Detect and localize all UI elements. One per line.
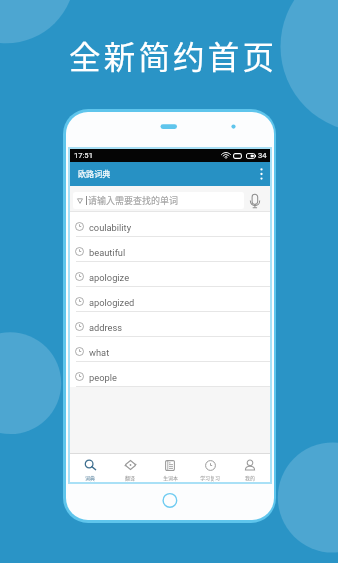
staticText: 词典 — [85, 474, 95, 481]
button[interactable]: what — [70, 337, 270, 361]
button[interactable]: 词典 — [70, 454, 110, 482]
staticText: beautiful — [89, 247, 126, 258]
button[interactable]: 翻译 — [110, 454, 150, 482]
staticText: coulability — [89, 222, 132, 233]
button[interactable]: apologized — [70, 287, 270, 311]
button[interactable]: 我的 — [230, 454, 270, 482]
button[interactable]: beautiful — [70, 237, 270, 261]
button[interactable]: address — [70, 312, 270, 336]
staticText: 请输入需要查找的单词 — [88, 194, 179, 207]
staticText: what — [89, 347, 110, 358]
staticText: 翻译 — [125, 474, 135, 481]
staticText: 17:51 — [74, 151, 93, 160]
button[interactable]: people — [70, 362, 270, 386]
staticText: 我的 — [245, 474, 255, 481]
button[interactable]: Voice search — [244, 191, 266, 211]
staticText: 欧路词典 — [78, 168, 111, 180]
staticText: apologized — [89, 297, 135, 308]
staticText: 生词本 — [163, 474, 178, 481]
staticText: 全新简约首页 — [69, 32, 278, 78]
button[interactable]: coulability — [70, 212, 270, 236]
button[interactable]: 请输入需要查找的单词 — [73, 192, 244, 209]
button[interactable]: 生词本 — [150, 454, 190, 482]
button[interactable]: More options — [252, 162, 270, 186]
staticText: apologize — [89, 272, 130, 283]
staticText: people — [89, 372, 117, 383]
staticText: 学习复习 — [200, 474, 220, 481]
staticText: address — [89, 322, 123, 333]
button[interactable]: apologize — [70, 262, 270, 286]
button[interactable]: 学习复习 — [190, 454, 230, 482]
staticText: 34 — [258, 151, 267, 160]
